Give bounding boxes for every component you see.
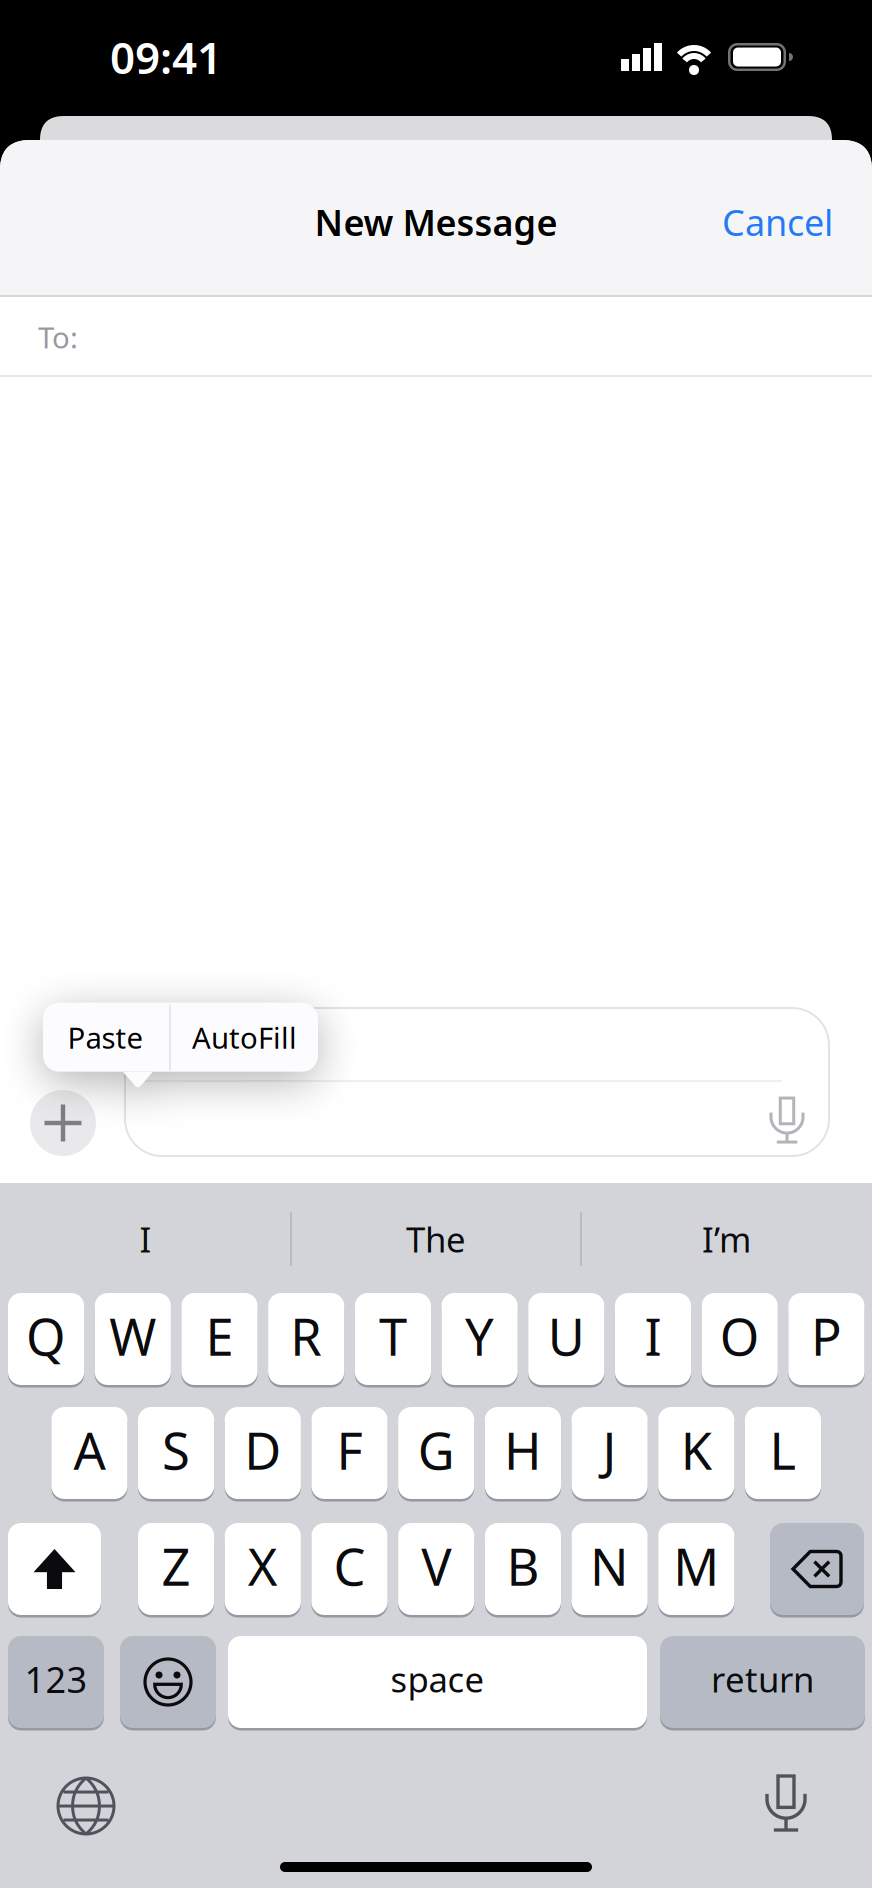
button[interactable]: W	[95, 1293, 171, 1385]
staticText: R	[290, 1302, 322, 1370]
staticText: V	[421, 1532, 451, 1600]
staticText: 123	[24, 1655, 87, 1703]
button[interactable]: F	[311, 1407, 388, 1499]
staticText: To:	[38, 317, 78, 356]
staticText: G	[418, 1416, 455, 1484]
staticText: The	[406, 1216, 466, 1262]
staticText: H	[504, 1416, 542, 1484]
staticText: New Message	[314, 198, 557, 246]
staticText: U	[548, 1302, 585, 1370]
staticText: I’m	[702, 1216, 751, 1262]
button[interactable]: M	[658, 1523, 734, 1615]
button[interactable]: O	[702, 1293, 778, 1385]
button[interactable]: X	[225, 1523, 301, 1615]
button[interactable]: I	[615, 1293, 691, 1385]
button[interactable]: Y	[441, 1293, 518, 1385]
staticText: I	[139, 1216, 151, 1262]
staticText: T	[379, 1302, 407, 1370]
staticText: N	[590, 1532, 629, 1600]
button[interactable]: I	[5, 1194, 285, 1284]
button[interactable]: return	[660, 1636, 865, 1728]
staticText: P	[811, 1302, 842, 1370]
button[interactable]: D	[225, 1407, 301, 1499]
staticText: Cancel	[722, 198, 833, 246]
button[interactable]: I’m	[586, 1194, 866, 1284]
staticText: return	[711, 1656, 814, 1702]
button[interactable]: J	[571, 1407, 648, 1499]
button[interactable]: A	[51, 1407, 127, 1499]
button[interactable]: L	[745, 1407, 821, 1499]
button[interactable]: Delete	[770, 1523, 864, 1615]
button[interactable]: Next keyboard	[58, 1778, 114, 1834]
button[interactable]: space	[228, 1636, 647, 1728]
button[interactable]: Numbers	[8, 1636, 104, 1728]
button[interactable]: P	[788, 1293, 864, 1385]
staticText: Y	[465, 1302, 494, 1370]
button[interactable]: Paste	[43, 1003, 167, 1072]
staticText: L	[769, 1416, 796, 1484]
button[interactable]: T	[355, 1293, 431, 1385]
button[interactable]: AutoFill	[172, 1003, 317, 1072]
button[interactable]: Q	[8, 1293, 84, 1385]
button[interactable]: Cancel	[722, 198, 833, 246]
staticText: E	[205, 1302, 233, 1370]
button[interactable]: G	[398, 1407, 474, 1499]
button[interactable]: Dictation	[767, 1776, 805, 1832]
staticText: A	[73, 1416, 105, 1484]
staticText: B	[506, 1532, 539, 1600]
button[interactable]: B	[485, 1523, 561, 1615]
staticText: D	[244, 1416, 281, 1484]
button[interactable]: Dictate	[771, 1098, 803, 1144]
button[interactable]: E	[181, 1293, 258, 1385]
staticText: Q	[26, 1302, 66, 1370]
button[interactable]: C	[311, 1523, 388, 1615]
staticText: F	[336, 1416, 362, 1484]
button[interactable]: Shift	[8, 1523, 101, 1615]
button[interactable]: K	[658, 1407, 734, 1499]
button[interactable]: U	[528, 1293, 604, 1385]
button[interactable]: Apps	[30, 1090, 96, 1156]
staticText: Z	[162, 1532, 191, 1600]
staticText: Paste	[67, 1018, 143, 1057]
staticText: space	[390, 1656, 484, 1702]
button[interactable]: Emoji	[120, 1636, 216, 1728]
staticText: O	[720, 1302, 760, 1370]
staticText: 09:41	[110, 28, 222, 86]
staticText: AutoFill	[192, 1018, 297, 1057]
button[interactable]: S	[138, 1407, 214, 1499]
staticText: I	[644, 1302, 661, 1370]
button[interactable]: H	[485, 1407, 561, 1499]
staticText: X	[248, 1532, 278, 1600]
staticText: M	[673, 1532, 719, 1600]
staticText: S	[162, 1416, 190, 1484]
staticText: K	[681, 1416, 712, 1484]
button[interactable]: Z	[138, 1523, 214, 1615]
button[interactable]: Message	[124, 1007, 830, 1157]
button[interactable]: N	[571, 1523, 648, 1615]
button[interactable]: The	[296, 1194, 576, 1284]
button[interactable]: To:	[0, 297, 872, 377]
staticText: J	[603, 1416, 617, 1484]
staticText: W	[109, 1302, 156, 1370]
button[interactable]: V	[398, 1523, 474, 1615]
staticText: C	[333, 1532, 365, 1600]
button[interactable]: R	[268, 1293, 344, 1385]
